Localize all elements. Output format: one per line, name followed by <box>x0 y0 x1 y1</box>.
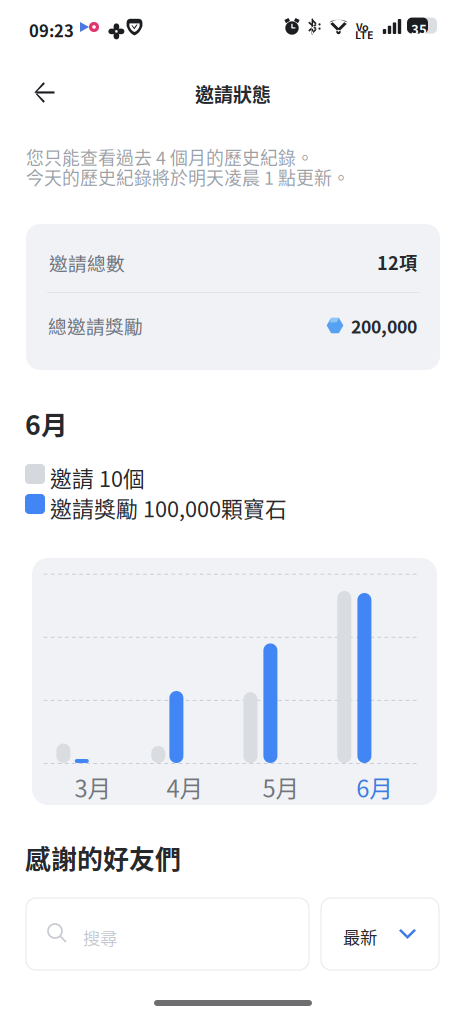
staticText: 3月 <box>75 770 112 804</box>
staticText: 5月 <box>262 770 299 804</box>
staticText: 搜尋 <box>83 925 117 950</box>
button[interactable]: 最新 <box>321 898 439 970</box>
staticText: 6月 <box>356 770 393 804</box>
staticText: 總邀請獎勵 <box>48 312 143 339</box>
staticText: 09:23 <box>29 18 74 42</box>
staticText: 6月 <box>25 404 68 443</box>
staticText: 今天的歷史紀錄將於明天凌晨 1 點更新。 <box>26 164 350 190</box>
staticText: LTE <box>355 27 374 42</box>
staticText: 12項 <box>377 249 417 275</box>
staticText: 邀請 10個 <box>50 462 145 493</box>
staticText: 35 <box>411 20 427 38</box>
staticText: 200,000 <box>351 313 417 338</box>
staticText: 邀請總數 <box>49 249 125 276</box>
staticText: 邀請狀態 <box>195 80 271 107</box>
staticText: Vo <box>356 19 369 34</box>
staticText: 感謝的好友們 <box>25 839 181 876</box>
button[interactable]: Back <box>21 70 69 114</box>
button[interactable]: 搜尋 <box>26 898 309 970</box>
staticText: 4月 <box>166 770 203 804</box>
staticText: 最新 <box>343 924 377 949</box>
staticText: 邀請獎勵 100,000顆寶石 <box>50 492 287 523</box>
staticText: 您只能查看過去 4 個月的歷史紀錄。 <box>26 144 314 170</box>
